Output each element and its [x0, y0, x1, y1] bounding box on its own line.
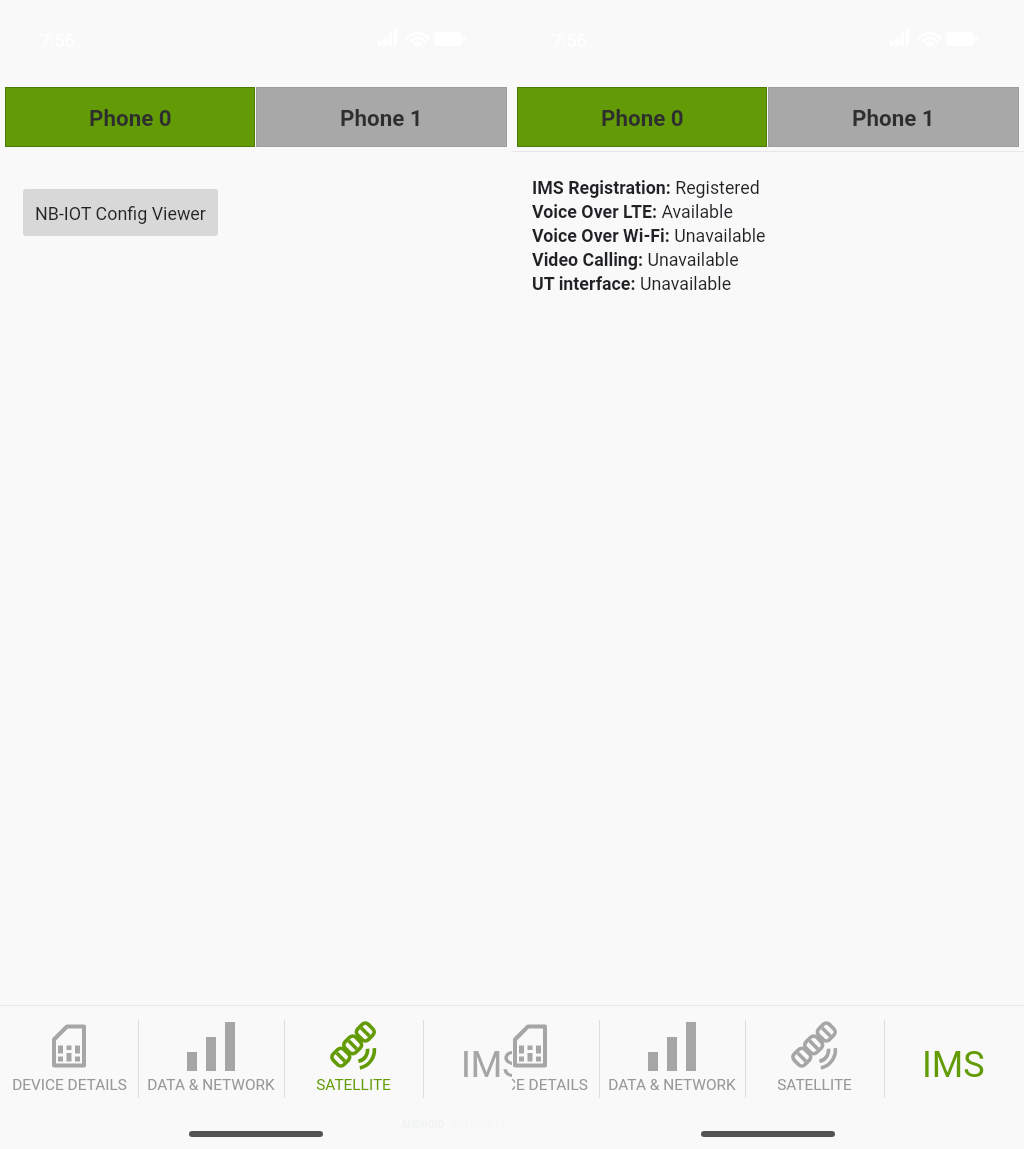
staticText: DEVICE DETAILS — [12, 1076, 127, 1094]
staticText: Phone 0 — [601, 105, 684, 131]
staticText: IMS — [461, 1044, 512, 1086]
staticText: DATA & NETWORK — [608, 1076, 736, 1094]
staticText: Phone 0 — [89, 105, 172, 131]
staticText: NB-IOT Config Viewer — [35, 203, 206, 224]
staticText: IMS Registration: Registered Voice Over … — [532, 177, 766, 295]
button[interactable]: Phone 1 — [769, 88, 1018, 146]
button[interactable]: IMS — [884, 1006, 1022, 1104]
staticText: Phone 1 — [340, 105, 423, 131]
button[interactable]: Phone 1 — [257, 88, 506, 146]
button[interactable]: DATA & NETWORK — [138, 1006, 284, 1104]
button[interactable]: DEVICE DETAILS — [512, 1006, 599, 1104]
staticText: SATELLITE — [777, 1076, 852, 1094]
button[interactable]: DEVICE DETAILS — [0, 1006, 138, 1104]
staticText: DEVICE DETAILS — [512, 1076, 588, 1094]
staticText: DATA & NETWORK — [147, 1076, 275, 1094]
staticText: ANDROID — [401, 1119, 445, 1131]
button[interactable]: SATELLITE — [745, 1006, 884, 1104]
staticText: SATELLITE — [316, 1076, 391, 1094]
button[interactable]: DATA & NETWORK — [599, 1006, 745, 1104]
staticText: IMS — [922, 1044, 985, 1086]
button[interactable]: NB-IOT Config Viewer — [23, 189, 218, 236]
button[interactable]: Phone 0 — [518, 88, 766, 146]
button[interactable]: IMS — [423, 1006, 512, 1104]
button[interactable]: Phone 0 — [6, 88, 254, 146]
staticText: Phone 1 — [852, 105, 935, 131]
button[interactable]: SATELLITE — [284, 1006, 423, 1104]
